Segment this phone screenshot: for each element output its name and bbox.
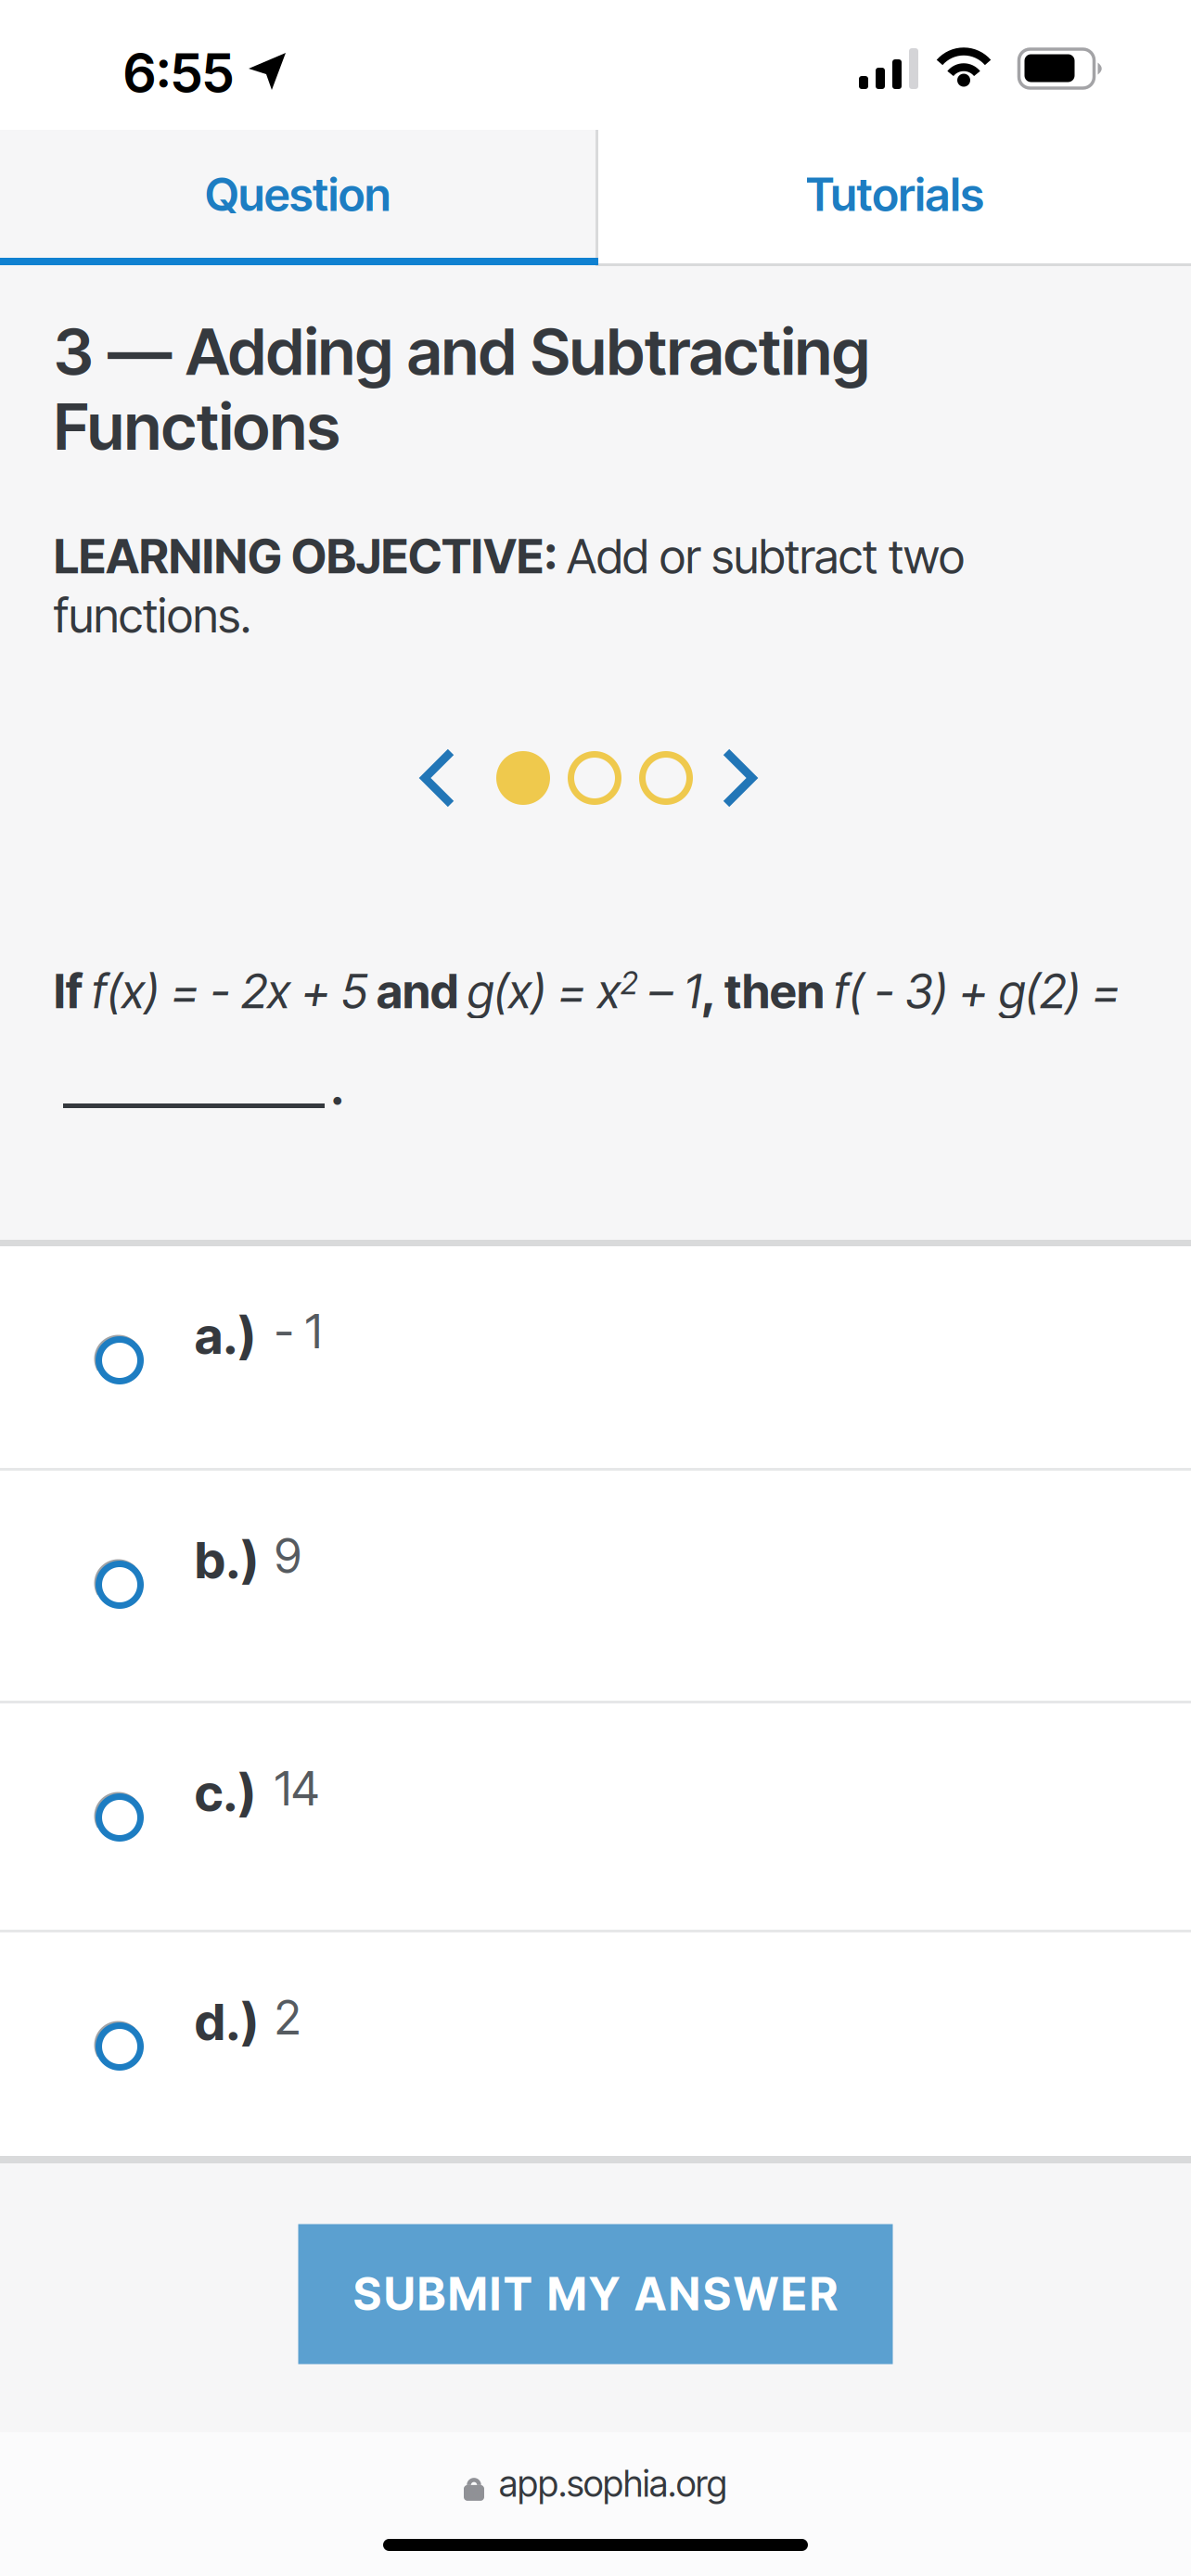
staticText: LEARNING OBJECTIVE: Add or subtract two … [54, 529, 965, 643]
staticText: SUBMIT MY ANSWER [353, 2267, 838, 2321]
button[interactable]: d.) [0, 1932, 1191, 2156]
button[interactable]: Question [0, 130, 595, 266]
staticText: - 1 [275, 1303, 322, 1360]
staticText: a.) [195, 1305, 256, 1366]
staticText: 2 [275, 1989, 301, 2046]
staticText: 9 [275, 1527, 301, 1584]
staticText: . [330, 1059, 344, 1116]
staticText: 6:55 [123, 41, 234, 105]
button[interactable]: b.) [0, 1471, 1191, 1701]
button[interactable]: Tutorials [598, 130, 1191, 266]
staticText: If f(x) = - 2x + 5 and g(x) = x2 – 1, th… [54, 963, 1121, 1019]
staticText: app.sophia.org [499, 2462, 727, 2505]
button[interactable]: c.) [0, 1703, 1191, 1930]
staticText: Tutorials [806, 167, 984, 222]
button[interactable]: Previous [420, 747, 455, 809]
staticText: 3 — Adding and Subtracting Functions [54, 312, 870, 465]
staticText: 14 [275, 1760, 319, 1817]
staticText: Question [205, 167, 391, 222]
button[interactable]: a.) [0, 1246, 1191, 1468]
staticText: c.) [195, 1762, 256, 1823]
button[interactable]: SUBMIT MY ANSWER [298, 2224, 893, 2364]
staticText: d.) [195, 1991, 259, 2052]
button[interactable]: Next [722, 747, 757, 809]
staticText: b.) [195, 1529, 259, 1590]
